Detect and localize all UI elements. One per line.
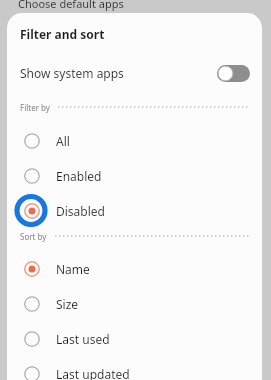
staticText: Size (56, 296, 79, 312)
button[interactable]: Name (7, 251, 262, 286)
staticText: Last used (56, 331, 110, 347)
button[interactable]: All (7, 123, 262, 158)
staticText: Choose default apps (18, 0, 124, 11)
staticText: Last updated (56, 366, 130, 380)
staticText: Sort by (20, 231, 47, 242)
staticText: Show system apps (20, 65, 124, 81)
staticText: All (56, 133, 70, 149)
button[interactable]: Enabled (7, 158, 262, 193)
staticText: Filter by (20, 102, 50, 113)
staticText: Enabled (56, 168, 102, 184)
button[interactable]: Size (7, 286, 262, 321)
staticText: Disabled (56, 203, 105, 219)
staticText: Filter and sort (20, 26, 105, 42)
button[interactable]: Last used (7, 321, 262, 356)
staticText: Name (56, 261, 90, 277)
button[interactable]: Show system apps (7, 60, 262, 86)
button[interactable]: Disabled (7, 193, 262, 228)
button[interactable]: Show system apps toggle (217, 65, 250, 82)
button[interactable]: Last updated (7, 356, 262, 380)
